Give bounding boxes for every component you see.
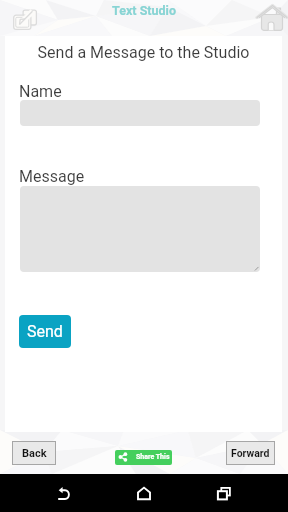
- button[interactable]: Recent apps: [204, 474, 244, 512]
- button[interactable]: Back: [44, 474, 84, 512]
- staticText: Send a Message to the Studio: [5, 43, 282, 62]
- staticText: Message: [19, 167, 85, 186]
- button[interactable]: Home: [253, 1, 285, 31]
- button[interactable]: Home: [124, 474, 164, 512]
- staticText: Forward: [231, 447, 270, 459]
- staticText: Back: [22, 447, 47, 460]
- staticText: Name: [19, 82, 62, 101]
- staticText: Text Studio: [112, 3, 176, 18]
- button[interactable]: Share This: [115, 450, 172, 465]
- button[interactable]: Send: [19, 315, 71, 348]
- button[interactable]: Open in new window: [9, 6, 37, 32]
- button[interactable]: Forward: [226, 441, 275, 465]
- button[interactable]: Back: [12, 441, 56, 465]
- staticText: Share This: [136, 453, 170, 461]
- staticText: Send: [27, 322, 63, 341]
